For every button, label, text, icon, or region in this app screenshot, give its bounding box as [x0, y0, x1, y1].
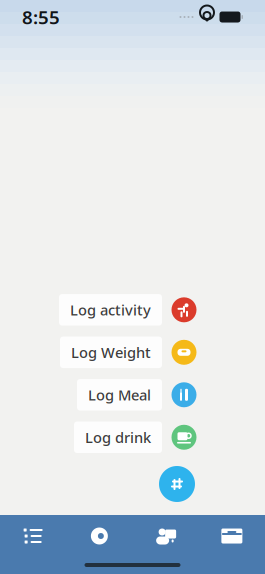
staticText: Log activity — [70, 300, 151, 320]
staticText: 8:55 — [22, 5, 60, 29]
button[interactable]: Community — [132, 515, 199, 557]
button[interactable]: Close menu — [157, 464, 197, 504]
staticText: Log drink — [85, 427, 151, 447]
button[interactable]: Log activity — [59, 294, 197, 326]
button[interactable]: Log Meal — [77, 379, 197, 410]
staticText: Log Meal — [88, 385, 151, 404]
button[interactable]: Activity list — [0, 515, 66, 557]
button[interactable]: Messages — [199, 515, 265, 557]
staticText: Log Weight — [71, 343, 151, 362]
button[interactable]: Log drink — [74, 421, 197, 453]
button[interactable]: Play — [66, 515, 132, 557]
button[interactable]: Log Weight — [60, 337, 197, 368]
